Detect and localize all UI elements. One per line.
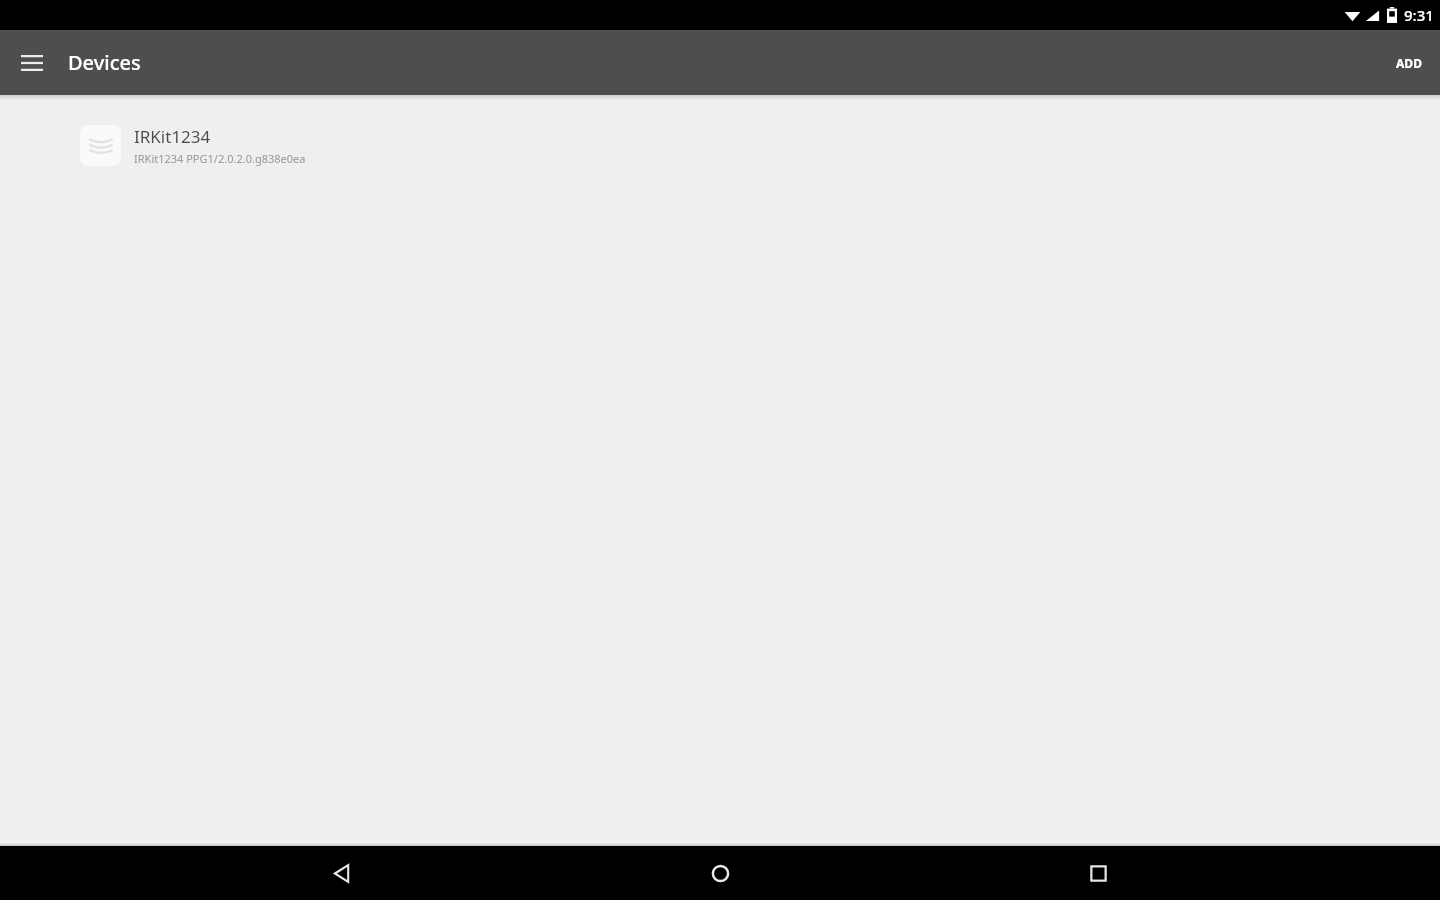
button[interactable]: ADD — [1378, 30, 1440, 95]
button[interactable]: Home — [684, 846, 756, 900]
staticText: Devices — [68, 49, 141, 76]
staticText: ADD — [1396, 55, 1422, 71]
button[interactable]: Recent apps — [1062, 846, 1134, 900]
button[interactable]: IRKit1234 — [0, 117, 1440, 173]
button[interactable]: Back — [306, 846, 378, 900]
staticText: IRKit1234 — [134, 125, 211, 148]
staticText: 9:31 — [1404, 5, 1434, 25]
staticText: IRKit1234 PPG1/2.0.2.0.g838e0ea — [134, 151, 306, 166]
button[interactable]: Open navigation menu — [8, 39, 56, 87]
